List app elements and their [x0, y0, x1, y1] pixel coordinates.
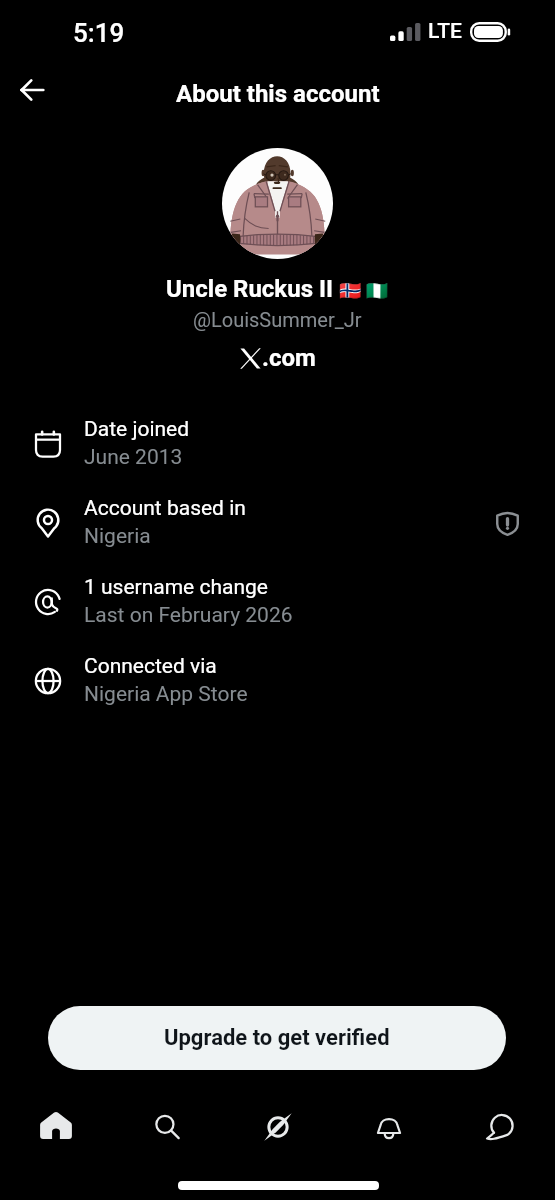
button[interactable]: 1 username change: [0, 562, 555, 641]
button[interactable]: .com: [234, 342, 322, 374]
button[interactable]: Home: [0, 1097, 111, 1157]
button[interactable]: Account based in: [0, 483, 555, 562]
staticText: Connected via: [84, 654, 217, 679]
button[interactable]: Account warning: [489, 505, 525, 541]
button[interactable]: Grok: [222, 1097, 333, 1157]
staticText: Nigeria: [84, 524, 151, 549]
button[interactable]: Connected via: [0, 641, 555, 720]
staticText: Upgrade to get verified: [164, 1025, 390, 1051]
staticText: Date joined: [84, 417, 190, 442]
staticText: @LouisSummer_Jr: [193, 308, 362, 331]
button[interactable]: Date joined: [0, 404, 555, 483]
button[interactable]: Profile photo: [222, 148, 333, 259]
staticText: Uncle Ruckus II 🇳🇴 🇳🇬: [166, 275, 389, 303]
staticText: LTE: [428, 19, 462, 44]
button[interactable]: Search: [111, 1097, 222, 1157]
button[interactable]: Notifications: [333, 1097, 444, 1157]
staticText: Nigeria App Store: [84, 682, 248, 707]
staticText: Last on February 2026: [84, 603, 293, 628]
button[interactable]: Messages: [444, 1097, 555, 1157]
staticText: 1 username change: [84, 575, 268, 600]
staticText: June 2013: [84, 445, 183, 470]
staticText: About this account: [176, 80, 380, 108]
staticText: 5:19: [73, 18, 125, 48]
button[interactable]: Back: [6, 67, 58, 119]
button[interactable]: Upgrade to get verified: [48, 1006, 506, 1070]
staticText: Account based in: [84, 496, 246, 521]
staticText: .com: [262, 344, 316, 372]
